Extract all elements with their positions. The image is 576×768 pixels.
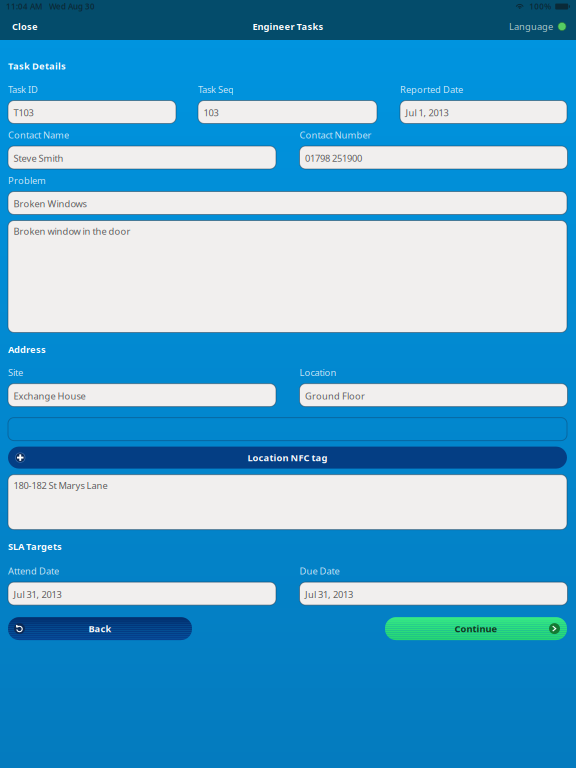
staticText: 100% [529,1,551,12]
staticText: SLA Targets [8,540,62,553]
staticText: Problem [8,174,46,186]
staticText: Engineer Tasks [252,20,323,33]
staticText: Jul 1, 2013 [405,106,448,119]
staticText: Contact Number [299,129,371,141]
button[interactable]: Back [8,617,192,640]
staticText: Exchange House [13,390,85,402]
staticText: Location NFC tag [247,451,327,464]
staticText: Task ID [8,83,38,95]
staticText: Steve Smith [13,152,63,164]
staticText: 180-182 St Marys Lane [13,479,107,491]
staticText: Task Details [8,60,66,72]
staticText: Continue [454,622,497,635]
staticText: Due Date [299,565,339,577]
staticText: 01798 251900 [305,152,362,164]
staticText: 11:04 AM [6,1,42,12]
staticText: Broken window in the door [13,225,130,237]
staticText: Jul 31, 2013 [305,588,353,600]
staticText: Broken Windows [13,197,86,210]
staticText: Jul 31, 2013 [13,588,61,600]
button[interactable]: Location NFC tag [8,447,567,469]
button[interactable]: Continue [385,617,567,640]
button[interactable]: Language [499,13,576,40]
staticText: Language [509,20,553,33]
staticText: Attend Date [8,565,59,577]
staticText: Contact Name [8,129,69,141]
button[interactable]: Close [0,13,50,40]
staticText: Close [12,20,38,33]
staticText: Task Seq [198,83,234,95]
staticText: Back [88,622,111,635]
staticText: Address [8,343,46,355]
staticText: Wed Aug 30 [49,1,95,12]
staticText: Ground Floor [305,390,365,402]
staticText: Location [299,366,336,379]
staticText: Site [8,366,23,379]
staticText: 103 [203,106,218,119]
staticText: Reported Date [400,83,463,95]
staticText: T103 [13,106,33,119]
